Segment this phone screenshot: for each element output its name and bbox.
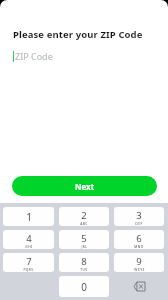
staticText: 1 <box>26 210 32 224</box>
button[interactable]: 7 <box>3 253 54 272</box>
button[interactable]: 8 <box>59 253 109 272</box>
staticText: DEF <box>135 222 143 226</box>
staticText: JKL <box>81 245 88 249</box>
button[interactable]: 0 <box>59 276 109 297</box>
staticText: MNO <box>134 245 144 249</box>
staticText: 8 <box>81 255 87 268</box>
staticText: WXYZ <box>134 268 145 272</box>
button[interactable]: 9 <box>114 253 164 272</box>
staticText: ZIP Code <box>15 50 53 62</box>
button[interactable]: 6 <box>114 230 164 249</box>
staticText: 6 <box>136 232 142 245</box>
staticText: GHI <box>25 245 33 249</box>
button[interactable]: 3 <box>114 207 164 226</box>
staticText: 4 <box>26 232 32 245</box>
button[interactable]: 5 <box>59 230 109 249</box>
staticText: Please enter your ZIP Code <box>13 28 143 41</box>
staticText: TUV <box>80 268 88 272</box>
staticText: 5 <box>81 232 87 245</box>
staticText: 0 <box>81 280 87 294</box>
button[interactable]: Backspace <box>114 276 164 297</box>
staticText: 7 <box>26 255 32 268</box>
staticText: 9 <box>136 255 142 268</box>
button[interactable]: Next <box>12 176 157 196</box>
button[interactable]: 4 <box>3 230 54 249</box>
button[interactable]: ZIP Code <box>0 49 168 63</box>
staticText: Next <box>75 181 95 192</box>
staticText: 3 <box>136 209 142 222</box>
staticText: PQRS <box>23 268 34 272</box>
staticText: ABC <box>80 222 88 226</box>
button[interactable]: 1 <box>3 207 54 226</box>
staticText: 2 <box>81 209 87 222</box>
button[interactable]: 2 <box>59 207 109 226</box>
